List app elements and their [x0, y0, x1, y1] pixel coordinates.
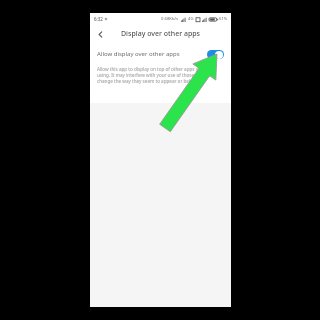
staticText: change the way they seem to appear or be… — [97, 78, 201, 84]
staticText: 61% — [219, 16, 228, 22]
staticText: Allow display over other apps — [97, 50, 207, 58]
button[interactable]: Allow display over other apps — [90, 43, 231, 65]
button[interactable]: Allow display over other apps toggle — [207, 50, 224, 59]
staticText: 6:32 — [94, 16, 103, 22]
staticText: using. It may interfere with your use of… — [97, 72, 213, 78]
staticText: 0.68Kb/s — [161, 16, 179, 22]
staticText: Allow this app to display on top of othe… — [97, 66, 209, 72]
button[interactable]: Back — [92, 26, 108, 42]
staticText: Display over other apps — [121, 29, 201, 39]
staticText: 4G — [188, 16, 194, 22]
